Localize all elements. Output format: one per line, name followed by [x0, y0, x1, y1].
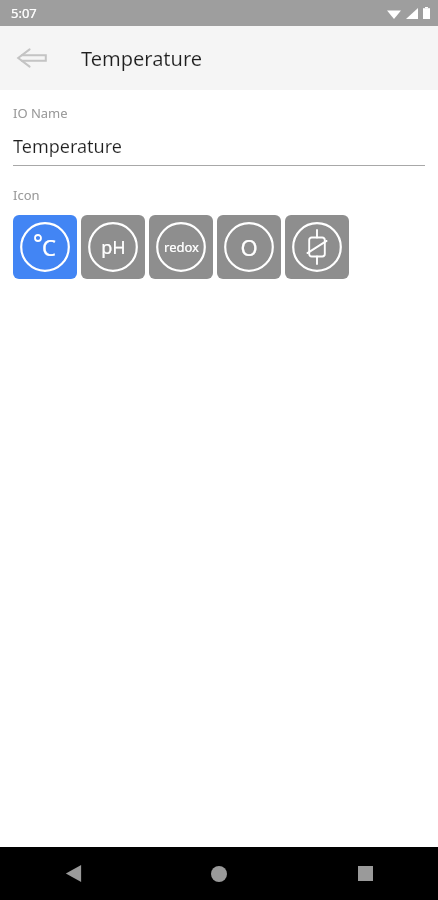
button[interactable]: Temperature [13, 134, 425, 166]
staticText: redox [164, 238, 199, 256]
button[interactable]: Home [146, 847, 292, 900]
button[interactable]: Oxygen [217, 215, 281, 279]
button[interactable]: Back [8, 34, 56, 82]
button[interactable]: Thermistor [285, 215, 349, 279]
staticText: Icon [13, 186, 40, 204]
staticText: 5:07 [11, 4, 37, 22]
staticText: O [240, 232, 258, 262]
button[interactable]: redox [149, 215, 213, 279]
button[interactable]: Celsius [13, 215, 77, 279]
staticText: Temperature [13, 134, 122, 159]
staticText: Temperature [81, 45, 203, 72]
staticText: pH [101, 235, 126, 260]
staticText: C [42, 232, 56, 262]
staticText: IO Name [13, 104, 68, 122]
button[interactable]: Back [0, 847, 146, 900]
button[interactable]: Recent apps [292, 847, 438, 900]
button[interactable]: pH [81, 215, 145, 279]
